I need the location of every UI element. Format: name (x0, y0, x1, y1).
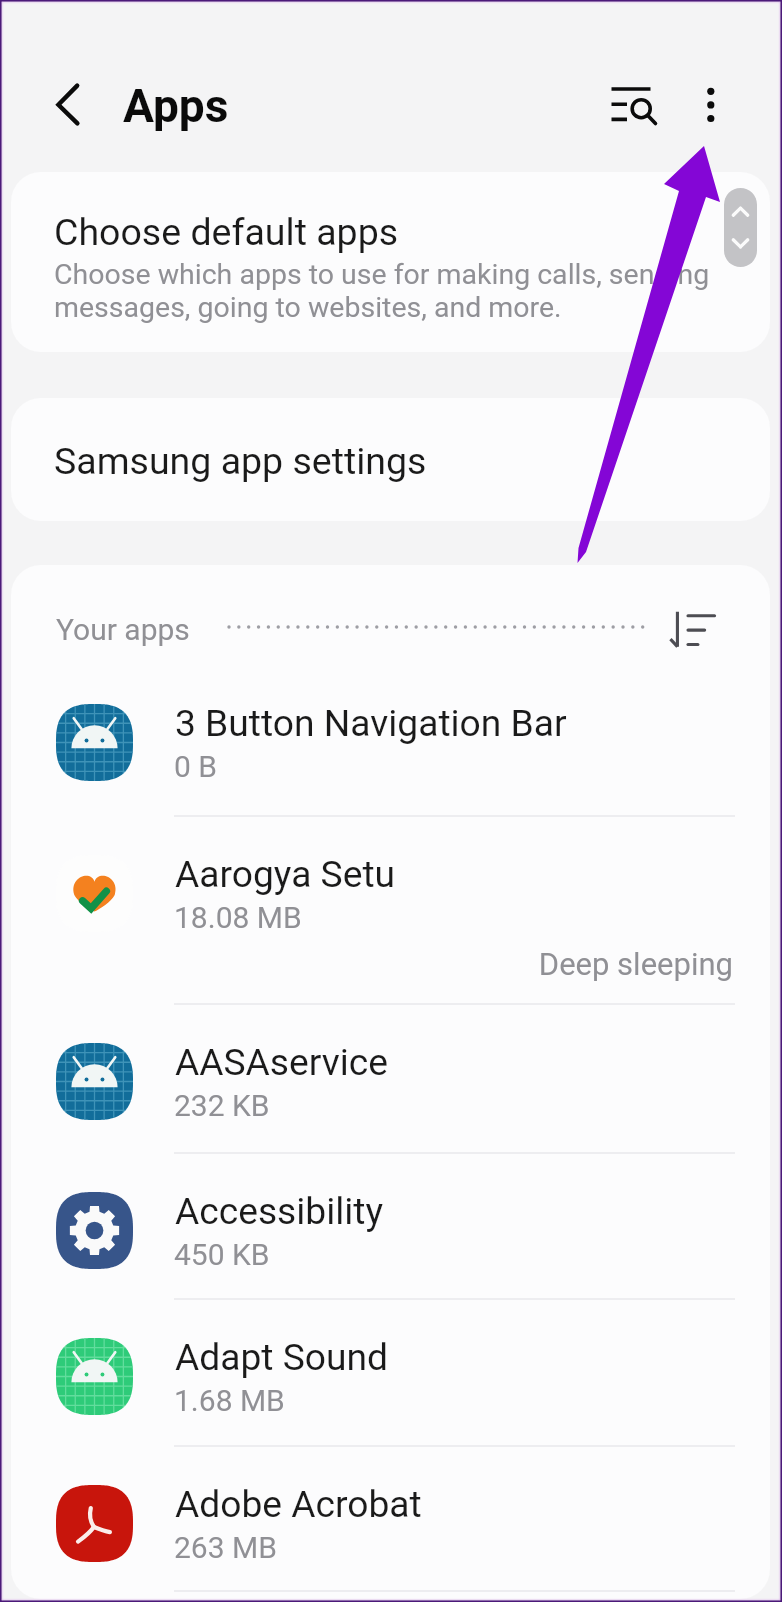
staticText: 232 KB (174, 1088, 270, 1123)
staticText: 0 B (174, 749, 217, 784)
staticText: Your apps (56, 612, 190, 647)
button[interactable]: Aarogya Setu (11, 817, 770, 1005)
staticText: 263 MB (174, 1530, 277, 1565)
staticText: Adobe Acrobat (175, 1482, 422, 1526)
button[interactable]: Scroll (724, 188, 757, 267)
button[interactable]: AASAservice (11, 1005, 770, 1154)
button[interactable]: Accessibility (11, 1154, 770, 1300)
staticText: 3 Button Navigation Bar (175, 701, 567, 745)
staticText: Accessibility (175, 1189, 384, 1233)
button[interactable]: Back (30, 64, 112, 146)
button[interactable]: More options (669, 63, 753, 147)
staticText: 450 KB (174, 1237, 270, 1272)
staticText: Samsung app settings (54, 439, 427, 483)
button[interactable]: Adapt Sound (11, 1300, 770, 1447)
staticText: Adapt Sound (175, 1335, 389, 1379)
staticText: 18.08 MB (174, 900, 302, 935)
staticText: Choose which apps to use for making call… (54, 258, 710, 324)
staticText: 1.68 MB (174, 1383, 285, 1418)
staticText: Deep sleeping (174, 946, 733, 982)
button[interactable]: 3 Button Navigation Bar (11, 666, 770, 817)
button[interactable]: Sort (659, 595, 726, 662)
staticText: Aarogya Setu (175, 852, 396, 896)
button[interactable]: Adobe Acrobat (11, 1447, 770, 1592)
staticText: AASAservice (175, 1040, 388, 1084)
staticText: Apps (123, 79, 229, 133)
button[interactable]: Search (590, 66, 674, 150)
staticText: Choose default apps (54, 210, 399, 254)
